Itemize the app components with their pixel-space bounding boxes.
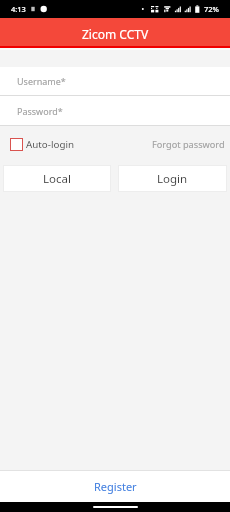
staticText: Register [94,479,137,494]
button[interactable]: Auto-login [0,138,74,151]
staticText: 72% [204,4,219,14]
other: Home [0,502,230,512]
button[interactable]: Username* [0,67,230,95]
staticText: Username* [17,75,66,87]
button[interactable]: Login [118,165,227,192]
button[interactable]: Register [0,471,230,502]
button[interactable]: Forgot password [152,138,230,151]
button[interactable]: Password* [0,96,230,125]
staticText: Password* [17,105,63,117]
button[interactable]: Local [3,165,111,192]
staticText: 4:13 [11,4,26,14]
staticText: Auto-login [26,138,74,151]
staticText: Local [43,171,71,187]
staticText: Zicom CCTV [82,26,149,42]
staticText: Login [157,171,188,187]
staticText: Forgot password [152,138,225,151]
